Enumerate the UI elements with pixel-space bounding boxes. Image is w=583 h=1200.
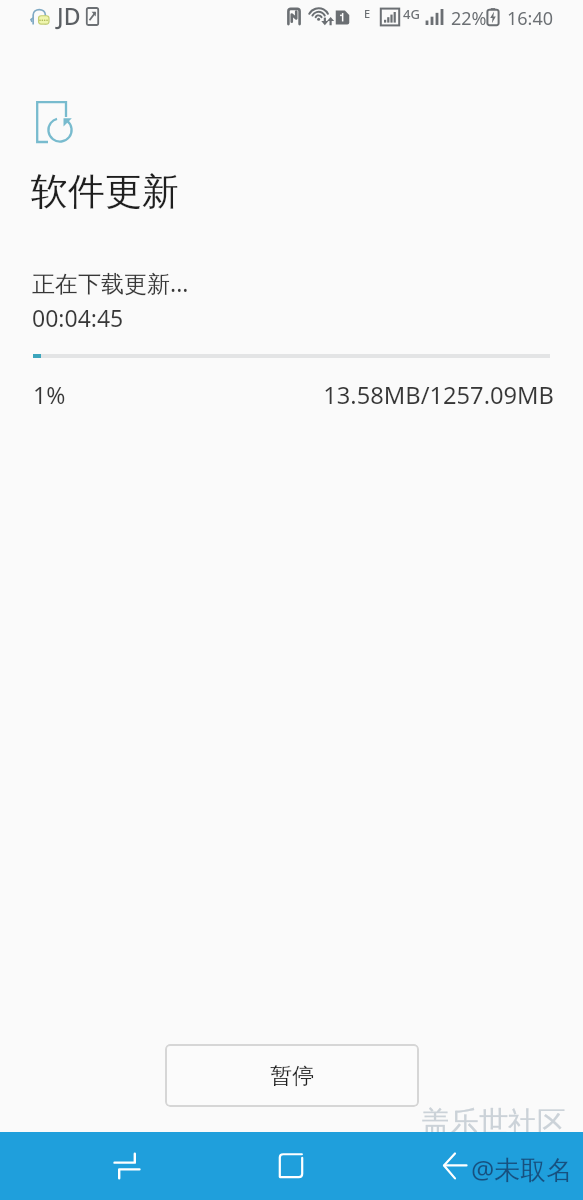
staticText: @未取名 [471,1151,573,1187]
staticText: 13.58MB/1257.09MB [0,379,554,411]
staticText: 1% [33,379,66,410]
staticText: JD [57,0,81,31]
button[interactable]: Back [391,1132,519,1200]
button[interactable]: Home [227,1132,355,1200]
staticText: 4G [403,5,420,23]
staticText: E [364,6,371,21]
staticText: 00:04:45 [32,302,124,333]
staticText: 22% [451,6,487,31]
staticText: 正在下载更新... [32,267,189,298]
staticText: 盖乐世社区 [421,1104,566,1141]
button[interactable]: 暂停 [165,1044,419,1107]
button[interactable]: Recent apps [63,1132,191,1200]
staticText: 16:40 [507,6,554,31]
staticText: 软件更新 [31,168,179,215]
staticText: 暂停 [270,1062,314,1090]
